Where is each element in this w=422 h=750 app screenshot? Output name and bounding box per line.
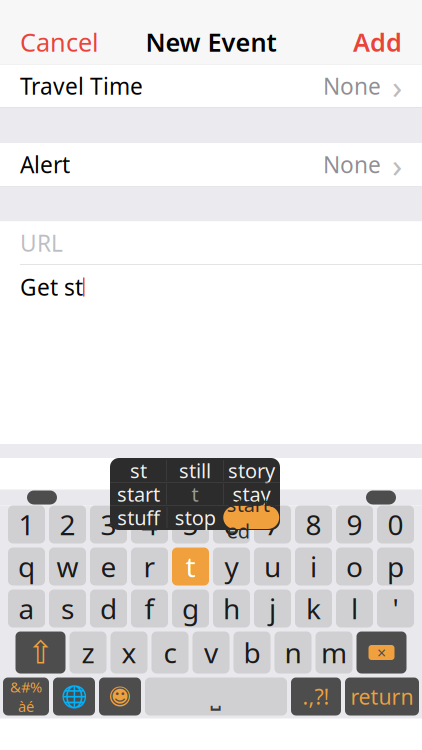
button[interactable]: Delete — [356, 631, 406, 673]
staticText: st — [130, 457, 147, 484]
staticText: o — [346, 548, 363, 585]
button[interactable]: Emoji — [99, 677, 141, 715]
staticText: None — [323, 71, 381, 101]
button[interactable]: x — [110, 631, 147, 673]
staticText: ☺ — [109, 685, 130, 708]
staticText: àé — [18, 696, 34, 716]
staticText: stuff — [117, 504, 160, 531]
button[interactable]: Next keyboard — [53, 677, 95, 715]
staticText: URL — [20, 228, 63, 258]
button[interactable]: p — [377, 547, 414, 585]
staticText: None — [323, 149, 381, 179]
staticText: i — [310, 548, 317, 585]
button[interactable]: v — [192, 631, 229, 673]
staticText: d — [100, 590, 117, 627]
button[interactable]: stuff — [111, 506, 167, 529]
button[interactable]: 4 — [131, 505, 168, 543]
staticText: 3 — [100, 506, 116, 543]
button[interactable]: t — [172, 547, 209, 585]
staticText: × — [377, 642, 386, 663]
button[interactable]: m — [315, 631, 352, 673]
button[interactable]: w — [49, 547, 86, 585]
button[interactable]: r — [131, 547, 168, 585]
staticText: 1 — [18, 506, 34, 543]
staticText: e — [100, 548, 116, 585]
staticText: return — [350, 682, 413, 711]
staticText: t — [185, 548, 195, 585]
button[interactable]: st — [110, 459, 166, 482]
staticText: 7 — [264, 506, 280, 543]
button[interactable]: 3 — [90, 505, 127, 543]
staticText: r — [143, 548, 155, 585]
button[interactable]: start — [110, 482, 166, 505]
button[interactable]: Shift — [15, 631, 65, 673]
staticText: p — [387, 548, 404, 585]
button[interactable]: j — [254, 589, 291, 627]
button[interactable]: Alert — [0, 143, 422, 186]
button[interactable]: 9 — [336, 505, 373, 543]
button[interactable]: b — [233, 631, 270, 673]
staticText: l — [351, 590, 358, 627]
button[interactable]: 8 — [295, 505, 332, 543]
button[interactable]: k — [295, 589, 332, 627]
button[interactable]: 6 — [213, 505, 250, 543]
staticText: stay — [232, 481, 270, 507]
staticText: u — [264, 548, 281, 585]
staticText: ⇧ — [27, 634, 54, 671]
staticText: Add — [353, 25, 402, 59]
staticText: y — [224, 548, 238, 585]
button[interactable]: 0 — [377, 505, 414, 543]
staticText: t — [191, 481, 198, 507]
staticText: b — [243, 634, 260, 671]
staticText: z — [81, 634, 94, 671]
button[interactable]: ' — [377, 589, 414, 627]
staticText: w — [56, 548, 78, 585]
button[interactable]: Symbols — [3, 677, 49, 715]
button[interactable]: i — [295, 547, 332, 585]
button[interactable]: q — [8, 547, 45, 585]
staticText: 6 — [223, 506, 239, 543]
button[interactable]: y — [213, 547, 250, 585]
button[interactable]: o — [336, 547, 373, 585]
staticText: n — [284, 634, 301, 671]
button[interactable]: Travel Time — [0, 64, 422, 108]
button[interactable]: 5 — [172, 505, 209, 543]
button[interactable]: .,?! — [291, 677, 341, 715]
button[interactable]: space — [145, 677, 287, 715]
staticText: x — [121, 634, 136, 671]
button[interactable]: 2 — [49, 505, 86, 543]
button[interactable]: stay — [223, 482, 279, 505]
staticText: &#% — [10, 677, 42, 696]
button[interactable]: d — [90, 589, 127, 627]
button[interactable]: n — [274, 631, 311, 673]
button[interactable]: g — [172, 589, 209, 627]
button[interactable]: return — [345, 677, 419, 715]
staticText: s — [61, 590, 74, 627]
button[interactable]: s — [49, 589, 86, 627]
button[interactable]: f — [131, 589, 168, 627]
button[interactable]: z — [69, 631, 106, 673]
button[interactable]: story — [223, 459, 279, 482]
button[interactable]: still — [167, 459, 223, 482]
button[interactable]: 1 — [8, 505, 45, 543]
button[interactable]: Add — [333, 20, 422, 64]
staticText: Cancel — [20, 25, 99, 59]
button[interactable]: h — [213, 589, 250, 627]
button[interactable]: u — [254, 547, 291, 585]
staticText: 8 — [305, 506, 321, 543]
staticText: Travel Time — [20, 71, 143, 101]
button[interactable]: Cancel — [0, 20, 119, 64]
button[interactable]: 7 — [254, 505, 291, 543]
staticText: v — [204, 634, 218, 671]
button[interactable]: started — [223, 506, 279, 529]
button[interactable]: t — [167, 482, 223, 505]
button[interactable]: c — [151, 631, 188, 673]
button[interactable]: a — [8, 589, 45, 627]
staticText: f — [144, 590, 154, 627]
button[interactable]: e — [90, 547, 127, 585]
staticText: k — [306, 590, 321, 627]
button[interactable]: l — [336, 589, 373, 627]
button[interactable]: stop — [167, 506, 223, 529]
staticText: stop — [175, 504, 216, 531]
staticText: 2 — [59, 506, 75, 543]
